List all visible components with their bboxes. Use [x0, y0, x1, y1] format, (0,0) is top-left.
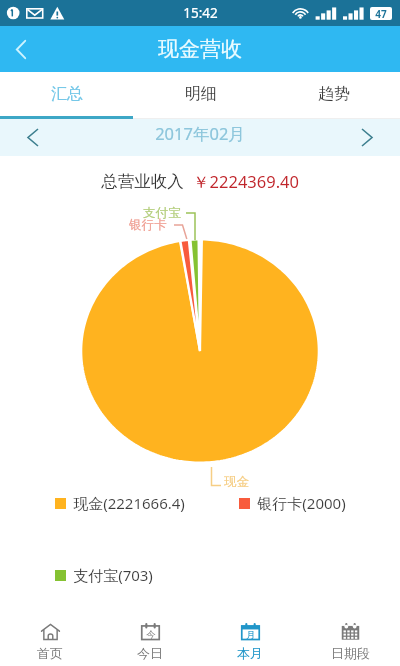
staticText: 银行卡 [129, 217, 167, 233]
button[interactable]: Previous month [0, 119, 66, 156]
button[interactable]: Next month [334, 119, 400, 156]
staticText: 15:42 [183, 4, 218, 22]
button[interactable]: 首页 [0, 618, 100, 666]
staticText: 今日 [137, 645, 163, 661]
staticText: 47 [375, 7, 387, 20]
staticText: 日期段 [331, 645, 370, 661]
button[interactable]: 现金(2221666.4) [55, 493, 185, 513]
button[interactable]: 今 [100, 618, 200, 666]
staticText: 现金营收 [158, 36, 242, 62]
staticText: 支付宝 [143, 205, 181, 221]
staticText: 今 [146, 629, 156, 641]
staticText: 汇总 [51, 84, 83, 104]
button[interactable]: 明细 [134, 72, 267, 119]
staticText: 银行卡(2000) [257, 493, 346, 513]
staticText: 支付宝(703) [73, 565, 153, 585]
button[interactable]: 银行卡(2000) [239, 493, 346, 513]
staticText: 现金 [224, 474, 249, 490]
button[interactable]: 月 [200, 618, 300, 666]
button[interactable]: 汇总 [0, 72, 134, 119]
button[interactable]: 日期段 [300, 618, 400, 666]
button[interactable]: Back [0, 26, 41, 72]
staticText: 趋势 [318, 84, 350, 104]
button[interactable]: 趋势 [267, 72, 400, 119]
staticText: 本月 [237, 645, 263, 661]
staticText: ￥2224369.40 [193, 170, 299, 193]
staticText: 总营业收入 [101, 171, 184, 192]
staticText: 现金(2221666.4) [73, 493, 185, 513]
staticText: 月 [246, 629, 256, 641]
staticText: 明细 [185, 84, 217, 104]
button[interactable]: 支付宝(703) [55, 565, 153, 585]
staticText: 2017年02月 [155, 122, 245, 145]
staticText: 首页 [37, 645, 63, 661]
